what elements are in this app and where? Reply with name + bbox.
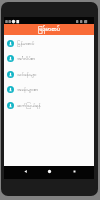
staticText: ဆက်သြယ်ရန် [17, 102, 41, 109]
button[interactable]: အခန်းများစာ [4, 81, 94, 97]
button[interactable]: ဆက်သြယ်ရန် [4, 97, 94, 113]
button[interactable]: အင်္ဂလိပ်စာ [4, 50, 94, 66]
staticText: အင်္ဂလိပ်စာ [17, 55, 36, 62]
button[interactable]: Recent apps [68, 166, 80, 179]
staticText: အခန်းများစာ [17, 86, 39, 93]
staticText: သင်ခန်းများ [17, 71, 37, 78]
button[interactable]: Home [43, 166, 55, 179]
staticText: မြန်မာစာပ် [17, 40, 35, 47]
button[interactable]: Back [19, 166, 31, 179]
staticText: မြန်မာစာပ် [38, 24, 61, 35]
button[interactable]: သင်ခန်းများ [4, 66, 94, 82]
button[interactable]: မြန်မာစာပ် [4, 35, 94, 51]
